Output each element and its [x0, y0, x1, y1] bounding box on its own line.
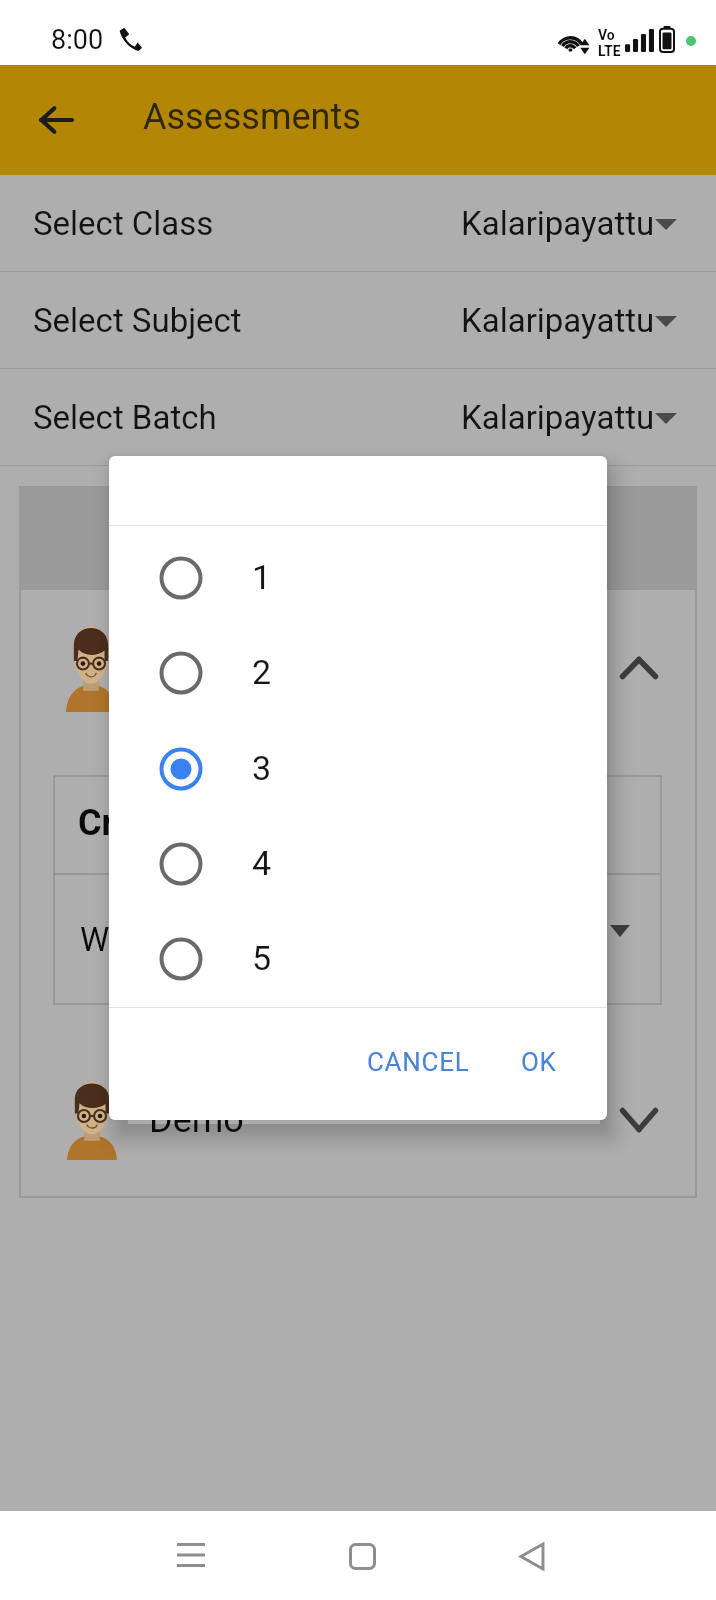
staticText: 1 [252, 557, 272, 597]
staticText: 5 [252, 938, 272, 978]
staticText: Select Subject [33, 301, 242, 340]
button[interactable]: OK [506, 1030, 572, 1094]
staticText: 4 [252, 843, 272, 883]
button[interactable]: Recent apps [155, 1525, 227, 1585]
button[interactable]: Back [28, 98, 84, 142]
staticText: 3 [252, 748, 272, 788]
staticText: Demo [149, 1099, 244, 1141]
button[interactable]: Back [496, 1526, 568, 1586]
staticText: Select Batch [33, 398, 217, 437]
staticText: Within [80, 920, 173, 959]
button[interactable]: 3 [109, 721, 607, 816]
button[interactable]: Home [326, 1526, 398, 1586]
staticText: Kalaripayattu [461, 301, 655, 340]
staticText: Kalaripayattu [461, 204, 655, 243]
button[interactable]: 2 [109, 625, 607, 720]
staticText: Assessments [143, 96, 361, 138]
staticText: 2 [252, 652, 272, 692]
staticText: LTE [598, 43, 621, 59]
button[interactable]: 5 [109, 911, 607, 1006]
staticText: Kalaripayattu [461, 398, 655, 437]
button[interactable]: Select Batch [0, 369, 716, 466]
button[interactable]: 4 [109, 816, 607, 911]
other: Expand [620, 1108, 658, 1132]
button[interactable]: 1 [109, 530, 607, 625]
button[interactable]: Collapse [20, 487, 696, 1197]
button[interactable]: CANCEL [356, 1030, 480, 1094]
other: Collapse [620, 657, 658, 679]
staticText: Select Class [33, 204, 214, 243]
staticText: 8:00 [51, 24, 104, 56]
button[interactable]: Select Subject [0, 272, 716, 369]
button[interactable]: Select Class [0, 175, 716, 272]
staticText: Create [78, 802, 185, 844]
staticText: CANCEL [367, 1047, 470, 1077]
staticText: Vo [598, 27, 615, 43]
staticText: OK [521, 1047, 557, 1077]
